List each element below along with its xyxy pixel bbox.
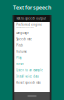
staticText: Install voice data <box>16 75 38 78</box>
button[interactable]: Speech rate <box>14 36 50 42</box>
staticText: Preferred engine <box>16 23 42 26</box>
staticText: Play <box>16 56 21 59</box>
button[interactable]: Listen to an example <box>14 67 50 73</box>
button[interactable]: Play <box>14 55 50 61</box>
button[interactable]: Reset speech rate <box>14 79 50 86</box>
staticText: Reset <box>16 62 24 66</box>
button[interactable]: Language <box>14 30 50 36</box>
staticText: Language <box>16 31 29 35</box>
staticText: Text for speech <box>13 4 51 11</box>
staticText: Listen to an example <box>16 68 43 72</box>
staticText: Pitch <box>16 44 23 47</box>
staticText: Text-to-speech output <box>16 17 46 20</box>
button[interactable]: Reset <box>14 61 50 67</box>
button[interactable]: Install voice data <box>14 73 50 79</box>
staticText: Volume <box>16 50 27 53</box>
button[interactable]: Pitch <box>14 42 50 48</box>
staticText: Google Speech Services <box>16 27 34 28</box>
button[interactable]: Volume <box>14 48 50 55</box>
staticText: Reset speech rate <box>16 81 41 84</box>
staticText: Speech rate <box>16 37 32 41</box>
